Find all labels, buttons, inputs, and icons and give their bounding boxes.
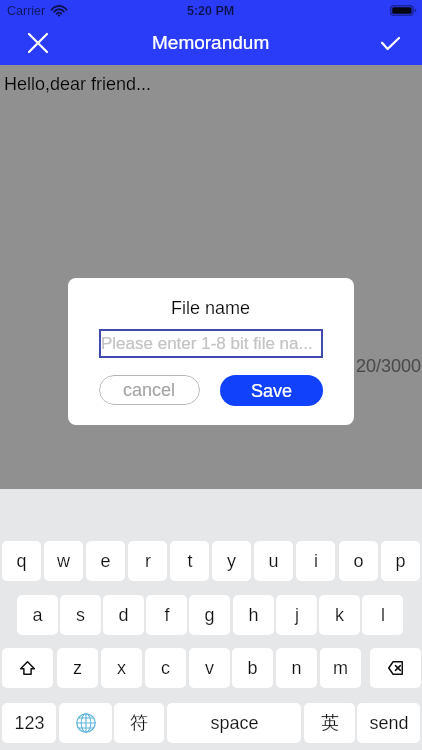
button[interactable]: Please enter 1-8 bit file na... xyxy=(99,329,323,358)
staticText: o xyxy=(353,551,364,571)
staticText: n xyxy=(291,658,302,678)
staticText: u xyxy=(268,551,279,571)
staticText: Hello,dear friend... xyxy=(4,74,152,94)
button[interactable]: 英 xyxy=(304,703,355,743)
staticText: q xyxy=(16,551,27,571)
button[interactable]: Save xyxy=(220,375,323,406)
button[interactable]: q xyxy=(2,541,41,581)
button[interactable]: Backspace xyxy=(370,648,421,688)
staticText: s xyxy=(76,605,85,625)
button[interactable]: send xyxy=(357,703,420,743)
button[interactable]: m xyxy=(320,648,361,688)
button[interactable]: space xyxy=(167,703,301,743)
button[interactable]: y xyxy=(212,541,251,581)
button[interactable]: w xyxy=(44,541,83,581)
staticText: y xyxy=(227,551,236,571)
staticText: send xyxy=(369,713,409,733)
staticText: e xyxy=(100,551,111,571)
staticText: z xyxy=(73,658,82,678)
button[interactable]: cancel xyxy=(99,375,200,405)
staticText: Memorandum xyxy=(152,32,270,53)
button[interactable]: Close xyxy=(18,23,58,63)
button[interactable]: h xyxy=(233,595,274,635)
staticText: f xyxy=(164,605,170,625)
button[interactable]: l xyxy=(362,595,403,635)
staticText: Carrier xyxy=(7,4,46,18)
staticText: 5:20 PM xyxy=(187,4,235,18)
staticText: cancel xyxy=(123,380,176,400)
staticText: 20/3000 xyxy=(356,356,422,376)
staticText: a xyxy=(32,605,43,625)
staticText: b xyxy=(247,658,258,678)
staticText: v xyxy=(205,658,214,678)
staticText: space xyxy=(210,713,259,733)
button[interactable]: v xyxy=(189,648,230,688)
button[interactable]: f xyxy=(146,595,187,635)
button[interactable]: Shift xyxy=(2,648,53,688)
button[interactable]: e xyxy=(86,541,125,581)
button[interactable]: n xyxy=(276,648,317,688)
button[interactable]: x xyxy=(101,648,142,688)
button[interactable]: t xyxy=(170,541,209,581)
staticText: i xyxy=(314,551,318,571)
staticText: j xyxy=(295,605,299,625)
button[interactable]: 123 xyxy=(2,703,56,743)
button[interactable]: r xyxy=(128,541,167,581)
button[interactable]: k xyxy=(319,595,360,635)
button[interactable]: j xyxy=(276,595,317,635)
button[interactable]: p xyxy=(381,541,420,581)
staticText: Please enter 1-8 bit file na... xyxy=(101,334,313,353)
button[interactable]: g xyxy=(189,595,230,635)
button[interactable]: s xyxy=(60,595,101,635)
staticText: w xyxy=(57,551,70,571)
button[interactable]: a xyxy=(17,595,58,635)
staticText: File name xyxy=(171,298,251,318)
staticText: r xyxy=(145,551,151,571)
button[interactable]: c xyxy=(145,648,186,688)
button[interactable]: Confirm xyxy=(370,23,410,63)
button[interactable]: b xyxy=(232,648,273,688)
button[interactable]: d xyxy=(103,595,144,635)
button[interactable]: o xyxy=(339,541,378,581)
staticText: 符 xyxy=(130,712,148,735)
staticText: d xyxy=(118,605,129,625)
button[interactable]: 符 xyxy=(114,703,164,743)
staticText: g xyxy=(204,605,215,625)
button[interactable]: z xyxy=(57,648,98,688)
staticText: c xyxy=(161,658,170,678)
staticText: 123 xyxy=(14,713,45,733)
button[interactable]: Switch keyboard xyxy=(59,703,112,743)
staticText: 英 xyxy=(321,712,339,735)
staticText: x xyxy=(117,658,126,678)
staticText: h xyxy=(248,605,259,625)
staticText: p xyxy=(395,551,406,571)
staticText: l xyxy=(381,605,385,625)
staticText: t xyxy=(187,551,193,571)
staticText: m xyxy=(333,658,348,678)
staticText: k xyxy=(335,605,344,625)
button[interactable]: i xyxy=(296,541,335,581)
staticText: Save xyxy=(251,381,293,401)
button[interactable]: u xyxy=(254,541,293,581)
